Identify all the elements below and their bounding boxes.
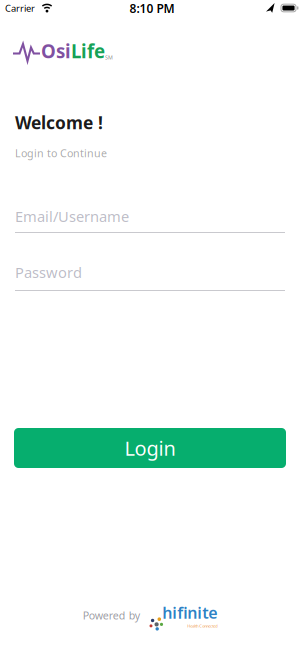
button[interactable]: Powered by [83, 602, 217, 629]
staticText: Life [71, 38, 105, 63]
staticText: Email/Username [15, 206, 129, 226]
staticText: Carrier [5, 2, 35, 14]
staticText: Health Connected [187, 623, 217, 628]
staticText: Login [124, 435, 175, 461]
staticText: hifinite [162, 602, 217, 623]
staticText: Login to Continue [15, 146, 107, 160]
staticText: 8:10 PM [129, 0, 174, 16]
staticText: Osi [41, 38, 71, 63]
staticText: Welcome ! [15, 111, 103, 134]
staticText: Powered by [83, 608, 140, 622]
staticText: SM [105, 54, 113, 61]
button[interactable]: Password [15, 257, 285, 291]
button[interactable]: Login [14, 428, 286, 468]
button[interactable]: Email/Username [15, 199, 285, 233]
staticText: Password [15, 262, 82, 282]
